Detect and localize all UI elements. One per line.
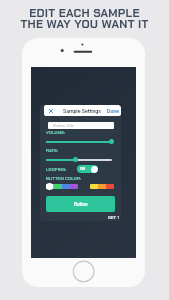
staticText: RATE: [46, 148, 59, 154]
staticText: ON [80, 167, 86, 171]
button[interactable]: Button [46, 196, 115, 212]
staticText: VOLUME: [46, 130, 66, 136]
staticText: LOOPING: [46, 167, 67, 173]
staticText: THE WAY YOU WANT IT [0, 16, 169, 31]
button[interactable]: ON [77, 165, 98, 173]
staticText: Done [107, 108, 119, 114]
button[interactable] [46, 184, 78, 189]
staticText: Sample Settings [63, 108, 101, 114]
staticText: BUTTON COLOR: [46, 176, 82, 182]
staticText: EDIT EACH SAMPLE [0, 5, 169, 20]
button[interactable]: Done [105, 105, 121, 116]
button[interactable] [90, 184, 114, 189]
staticText: SET 1 [108, 215, 119, 221]
staticText: Button Title [53, 123, 74, 128]
button[interactable]: Close [44, 105, 58, 116]
staticText: Button [74, 202, 88, 207]
button[interactable]: Button Title [48, 122, 114, 129]
